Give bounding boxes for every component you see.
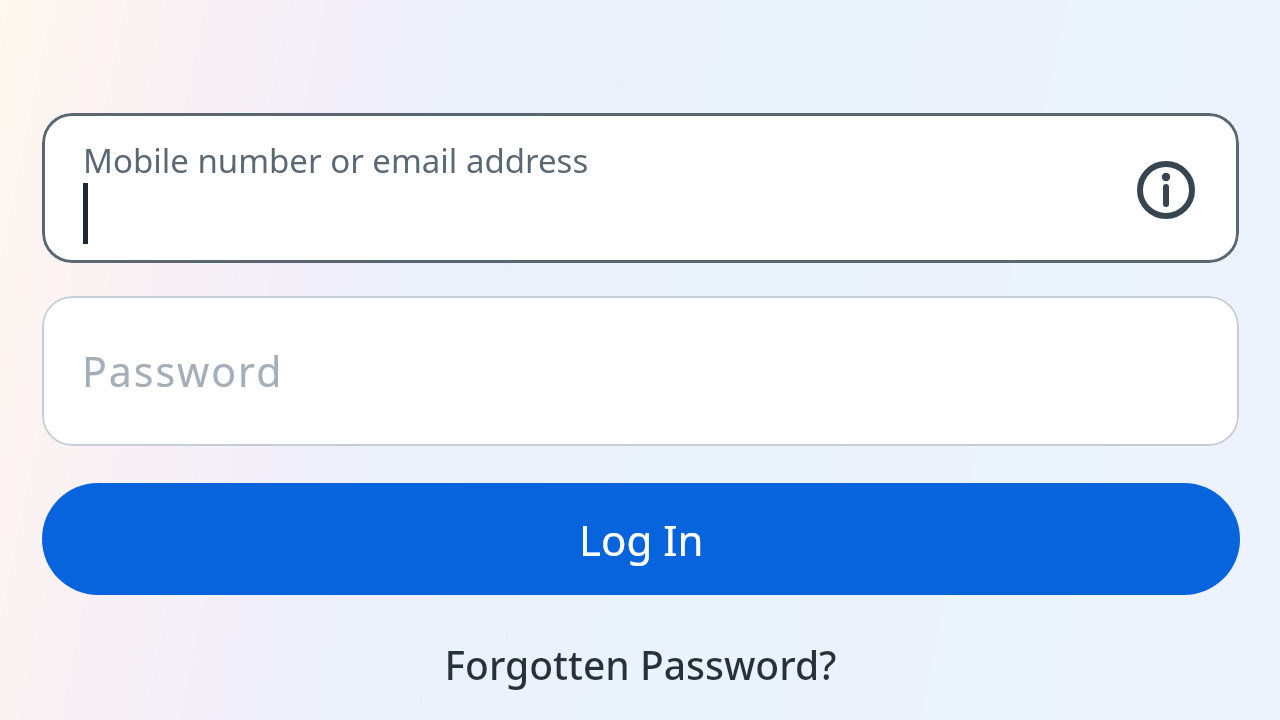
staticText: Log In	[579, 511, 704, 568]
button[interactable]: Log In	[42, 483, 1240, 595]
button[interactable]: Forgotten Password?	[444, 638, 837, 691]
button[interactable]: Mobile number or email address	[42, 113, 1239, 263]
button[interactable]: Password	[42, 296, 1239, 446]
button[interactable]	[1136, 160, 1196, 220]
staticText: Password	[82, 343, 284, 399]
staticText: Mobile number or email address	[83, 138, 589, 183]
